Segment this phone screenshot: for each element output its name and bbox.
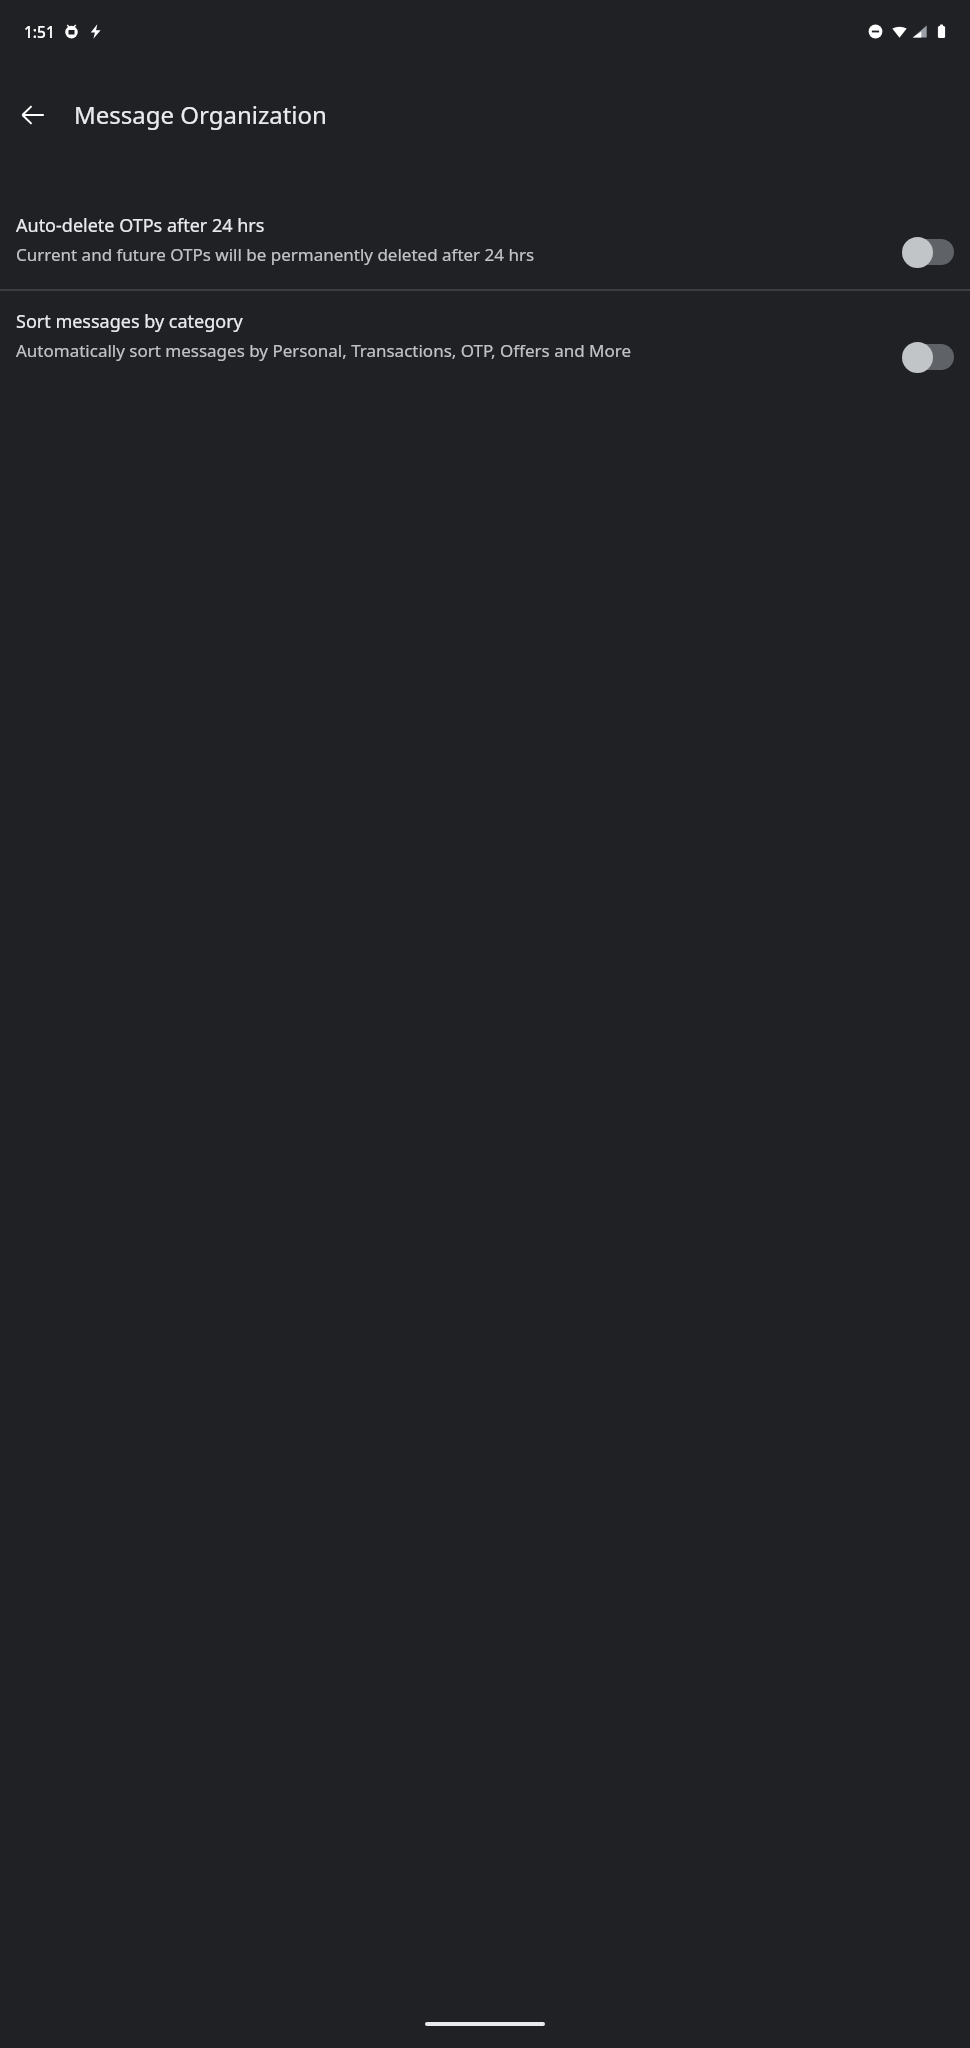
button[interactable]: Toggle bbox=[902, 235, 954, 269]
staticText: 1:51 bbox=[24, 21, 55, 42]
staticText: Message Organization bbox=[74, 98, 327, 131]
staticText: Auto-delete OTPs after 24 hrs bbox=[16, 213, 265, 238]
button[interactable]: Auto-delete OTPs after 24 hrs bbox=[0, 195, 970, 289]
staticText: Sort messages by category bbox=[16, 309, 243, 334]
button[interactable]: Back bbox=[9, 91, 57, 139]
button[interactable]: Sort messages by category bbox=[0, 291, 970, 394]
staticText: Current and future OTPs will be permanen… bbox=[16, 243, 535, 266]
button[interactable]: Toggle bbox=[902, 340, 954, 374]
staticText: Automatically sort messages by Personal,… bbox=[16, 339, 632, 362]
